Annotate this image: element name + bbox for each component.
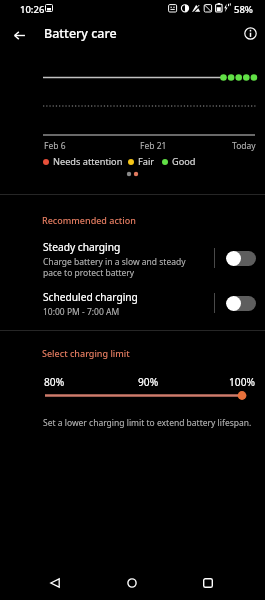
button[interactable]: Recents <box>186 566 230 600</box>
staticText: Set a lower charging limit to extend bat… <box>43 417 252 429</box>
staticText: Needs attention <box>53 155 123 168</box>
staticText: 80% <box>44 375 65 389</box>
staticText: Scheduled charging <box>43 290 138 304</box>
button[interactable]: Toggle <box>226 296 256 311</box>
staticText: Select charging limit <box>42 347 130 359</box>
staticText: 10:00 PM - 7:00 AM <box>43 306 120 318</box>
staticText: 90% <box>138 375 159 389</box>
staticText: Fair <box>138 155 155 168</box>
button[interactable]: Scheduled charging <box>0 282 265 320</box>
button[interactable]: Toggle <box>226 251 256 266</box>
button[interactable]: Home <box>110 566 154 600</box>
button[interactable]: Back <box>3 19 35 51</box>
staticText: Charge battery in a slow and steady pace… <box>43 256 186 278</box>
staticText: Today <box>232 140 256 152</box>
staticText: Good <box>172 155 196 168</box>
button[interactable]: Charging limit slider <box>0 388 265 404</box>
staticText: 58% <box>234 3 253 16</box>
staticText: Steady charging <box>43 240 121 254</box>
staticText: Feb 6 <box>44 140 66 152</box>
staticText: 100% <box>229 375 255 389</box>
staticText: Feb 21 <box>140 140 167 152</box>
staticText: 10:26 <box>20 3 45 16</box>
staticText: Battery care <box>44 25 117 42</box>
staticText: Recommended action <box>42 214 136 226</box>
button[interactable]: Info <box>234 17 265 49</box>
button[interactable]: Steady charging <box>0 232 265 280</box>
button[interactable]: Back <box>33 566 77 600</box>
